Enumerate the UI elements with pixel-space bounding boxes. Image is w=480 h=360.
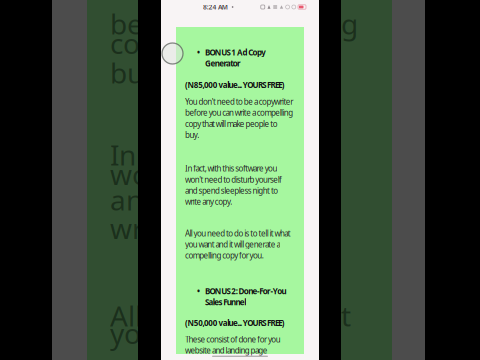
- staticText: (N50,000 value... YOURS FREE): [185, 317, 285, 328]
- staticText: You don't need to be a copywriter before…: [185, 96, 293, 140]
- staticText: In fa: [110, 136, 169, 173]
- staticText: BONUS 2: Done-For-You Sales Funnel: [205, 286, 287, 307]
- staticText: All you need to do is to tell it what yo…: [185, 228, 291, 261]
- staticText: In fact, with this software you won't ne…: [185, 163, 282, 207]
- staticText: writ: [110, 209, 161, 247]
- staticText: buy.: [110, 54, 165, 91]
- button[interactable]: Time, 8:24 AM: [203, 3, 233, 11]
- staticText: •: [197, 286, 200, 296]
- button[interactable]: Status: cellular, Wi-Fi, battery: [261, 4, 306, 9]
- staticText: copy: [110, 24, 171, 62]
- staticText: g: [341, 5, 358, 42]
- staticText: These consist of done for you website an…: [185, 334, 281, 356]
- staticText: (N85,000 value... YOURS FREE): [185, 80, 285, 90]
- staticText: 8:24 AM: [203, 3, 228, 11]
- staticText: won: [110, 155, 166, 193]
- staticText: and: [110, 181, 160, 218]
- staticText: All y: [110, 297, 163, 334]
- staticText: befo: [110, 5, 170, 42]
- staticText: t: [341, 297, 351, 334]
- staticText: •: [197, 47, 200, 58]
- staticText: you: [110, 314, 158, 352]
- staticText: BONUS 1 Ad Copy Generator: [205, 47, 266, 69]
